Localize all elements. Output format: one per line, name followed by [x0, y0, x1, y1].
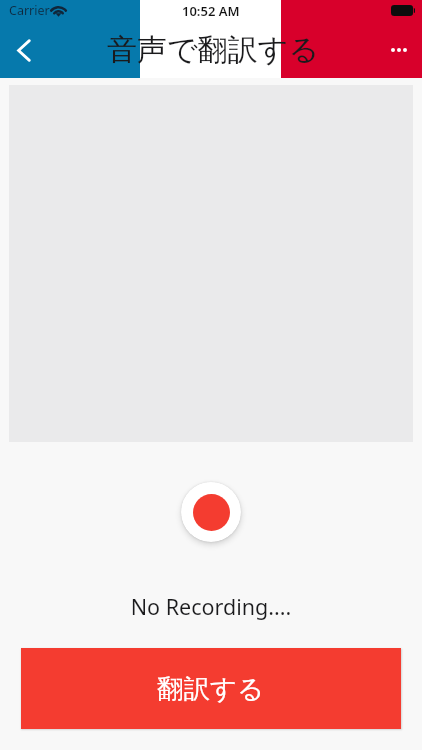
staticText: 10:52 AM — [182, 2, 240, 20]
button[interactable]: 翻訳する — [21, 648, 401, 729]
button[interactable]: More options — [376, 27, 422, 73]
button[interactable]: Record — [181, 482, 241, 542]
staticText: 音声で翻訳する — [107, 31, 320, 69]
staticText: 翻訳する — [157, 672, 265, 705]
staticText: No Recording.... — [0, 592, 422, 621]
button[interactable]: Back — [0, 27, 46, 73]
staticText: Carrier — [9, 2, 50, 19]
